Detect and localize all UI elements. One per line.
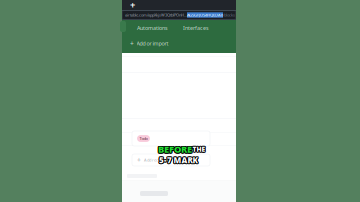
- staticText: 5-7: [160, 156, 173, 166]
- staticText: THE: [193, 145, 206, 154]
- button[interactable]: airtable.com/appXkjsW3QtblPOnHwPu9v: [123, 11, 235, 19]
- staticText: BEFORE: [157, 143, 191, 155]
- staticText: Todo: [139, 136, 147, 141]
- staticText: 5-7: [160, 154, 173, 165]
- staticText: BEFORE: [159, 142, 193, 155]
- button[interactable]: +: [130, 38, 235, 49]
- staticText: MARK: [173, 156, 197, 166]
- staticText: blocks: [224, 12, 235, 18]
- button[interactable]: Automations: [135, 23, 170, 33]
- staticText: BEFORE: [158, 143, 192, 155]
- staticText: Automations: [137, 24, 168, 32]
- staticText: +: [130, 0, 135, 11]
- staticText: THE: [192, 145, 205, 154]
- staticText: BEFORE: [157, 142, 191, 155]
- staticText: 5-7: [158, 156, 171, 166]
- staticText: THE: [192, 145, 205, 154]
- staticText: 5-7: [158, 155, 171, 165]
- staticText: 5-7: [159, 154, 172, 165]
- staticText: BEFORE: [159, 143, 193, 155]
- staticText: 5-7: [160, 155, 173, 165]
- staticText: THE: [192, 145, 205, 154]
- staticText: +: [130, 39, 134, 48]
- staticText: 5-7: [159, 156, 172, 166]
- staticText: MARK: [173, 154, 197, 165]
- staticText: BEFORE: [159, 144, 193, 156]
- staticText: THE: [192, 144, 205, 153]
- staticText: BEFORE: [157, 144, 191, 156]
- staticText: THE: [192, 146, 205, 155]
- staticText: MARK: [173, 155, 197, 165]
- staticText: THE: [193, 145, 206, 154]
- button[interactable]: Interfaces: [181, 23, 211, 33]
- button[interactable]: New tab: [127, 0, 138, 10]
- staticText: airtable.com/appXkjsW3QtblPOnHwPu9v: [125, 12, 187, 18]
- staticText: MARK: [173, 155, 197, 165]
- staticText: Interfaces: [183, 24, 209, 32]
- staticText: +: [137, 156, 141, 164]
- staticText: MARK: [174, 154, 198, 165]
- staticText: BEFORE: [158, 142, 192, 154]
- staticText: THE: [192, 144, 205, 153]
- staticText: AGSGFJUS4HQEDA8: [187, 12, 223, 18]
- staticText: 5-7: [158, 154, 171, 165]
- staticText: MARK: [174, 156, 198, 166]
- staticText: THE: [193, 144, 206, 153]
- staticText: MARK: [173, 156, 197, 166]
- staticText: Add record: [144, 157, 164, 163]
- staticText: MARK: [174, 155, 198, 165]
- staticText: 5-7: [159, 155, 172, 165]
- staticText: Add or import: [136, 40, 168, 47]
- staticText: MARK: [173, 154, 197, 165]
- staticText: BEFORE: [158, 144, 192, 156]
- button[interactable]: +: [132, 154, 210, 166]
